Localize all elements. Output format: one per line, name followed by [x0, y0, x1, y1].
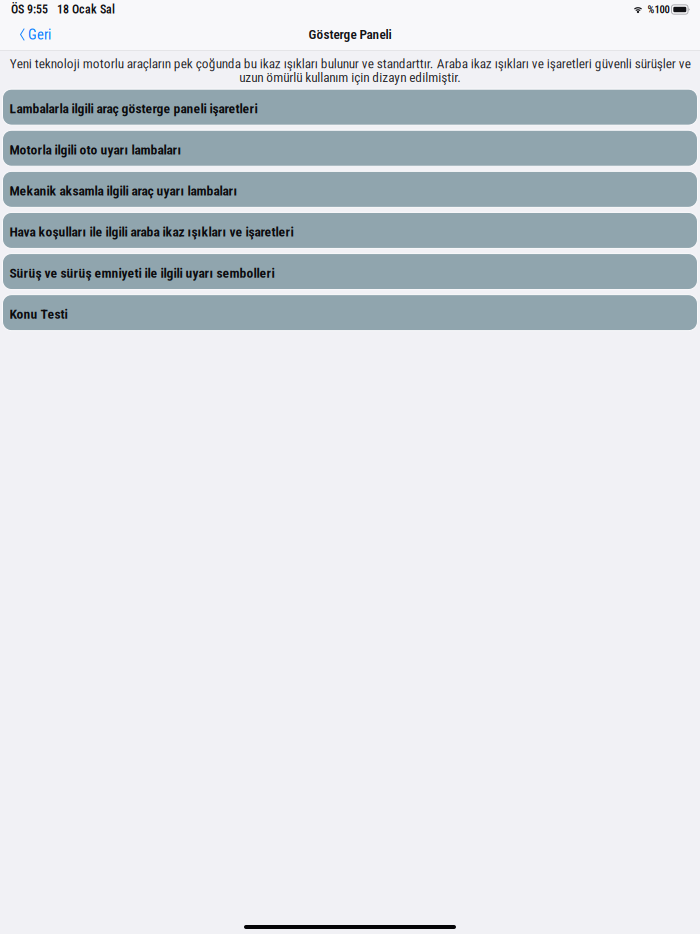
- staticText: Yeni teknoloji motorlu araçların pek çoğ…: [9, 56, 690, 85]
- staticText: Hava koşulları ile ilgili araba ikaz ışı…: [9, 224, 293, 240]
- button[interactable]: Sürüş ve sürüş emniyeti ile ilgili uyarı…: [2, 253, 697, 289]
- button[interactable]: Konu Testi: [2, 295, 697, 331]
- button[interactable]: Mekanik aksamla ilgili araç uyarı lambal…: [2, 171, 697, 207]
- button[interactable]: Geri: [15, 21, 56, 48]
- button[interactable]: Hava koşulları ile ilgili araba ikaz ışı…: [2, 212, 697, 248]
- button[interactable]: Motorla ilgili oto uyarı lambaları: [2, 130, 697, 166]
- staticText: Konu Testi: [9, 306, 67, 322]
- staticText: ÖS 9:55 18 Ocak Sal: [11, 2, 115, 17]
- staticText: Motorla ilgili oto uyarı lambaları: [9, 142, 181, 158]
- staticText: %100: [643, 3, 671, 16]
- staticText: Lambalarla ilgili araç gösterge paneli i…: [9, 101, 257, 117]
- staticText: Geri: [28, 26, 51, 43]
- button[interactable]: Lambalarla ilgili araç gösterge paneli i…: [2, 89, 697, 125]
- staticText: Mekanik aksamla ilgili araç uyarı lambal…: [9, 183, 237, 199]
- staticText: Sürüş ve sürüş emniyeti ile ilgili uyarı…: [9, 265, 274, 281]
- staticText: Gösterge Paneli: [308, 27, 391, 42]
